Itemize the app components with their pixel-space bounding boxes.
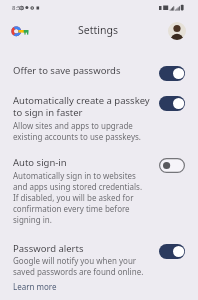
staticText: Auto sign-in xyxy=(13,156,67,169)
button[interactable]: Automatically create a passkey to sign i… xyxy=(0,88,198,148)
button[interactable]: Toggle on xyxy=(159,244,185,259)
staticText: Offer to save passwords xyxy=(13,64,121,77)
staticText: 8:58 xyxy=(12,4,24,12)
button[interactable]: Account xyxy=(168,22,186,40)
button[interactable]: Auto sign-in xyxy=(0,150,198,235)
staticText: Settings xyxy=(78,23,118,37)
staticText: Automatically create a passkey to sign i… xyxy=(13,94,150,119)
button[interactable]: Google Password Manager xyxy=(11,22,29,40)
button[interactable]: Learn more xyxy=(0,280,44,291)
button[interactable]: Toggle off xyxy=(159,158,185,173)
staticText: Google will notify you when your saved p… xyxy=(13,255,144,277)
button[interactable]: Toggle on xyxy=(159,66,185,81)
staticText: Password alerts xyxy=(13,242,84,255)
staticText: Automatically sign in to websites and ap… xyxy=(13,170,143,225)
staticText: Learn more xyxy=(13,281,57,292)
button[interactable]: Toggle on xyxy=(159,96,185,111)
staticText: Allow sites and apps to upgrade existing… xyxy=(13,120,141,142)
button[interactable]: Password alerts xyxy=(0,236,198,296)
button[interactable]: Offer to save passwords xyxy=(0,58,198,88)
